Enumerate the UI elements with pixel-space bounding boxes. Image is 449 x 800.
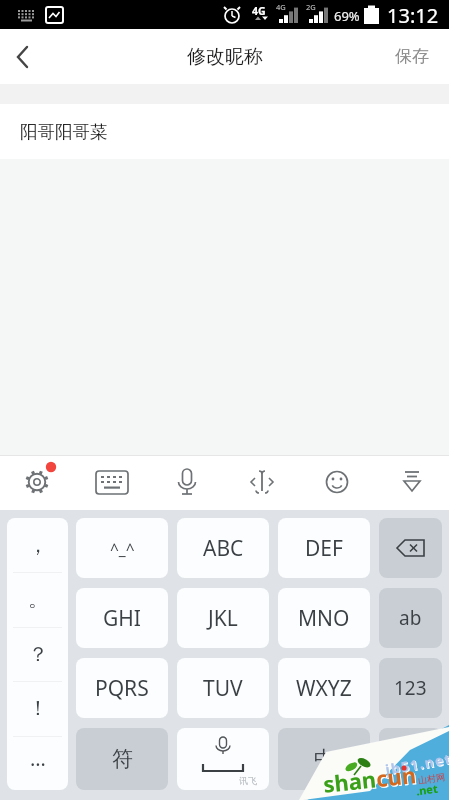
staticText: .net	[415, 780, 439, 798]
button[interactable]: JKL	[177, 588, 269, 648]
staticText: …	[30, 745, 46, 772]
staticText: ，	[28, 533, 48, 558]
button[interactable]: ABC	[177, 518, 269, 578]
button[interactable]: DEF	[278, 518, 370, 578]
button[interactable]: 中	[278, 728, 370, 790]
staticText: ？	[28, 642, 48, 667]
staticText: 123	[394, 675, 427, 701]
staticText: 修改昵称	[187, 45, 263, 69]
button[interactable]	[379, 728, 442, 790]
button[interactable]: ^_^	[76, 518, 168, 578]
button[interactable]: ab	[379, 588, 442, 648]
button[interactable]: 讯飞	[177, 728, 269, 790]
staticText: 中	[314, 746, 335, 772]
button[interactable]: TUV	[177, 658, 269, 718]
staticText: TUV	[203, 674, 243, 703]
staticText: shan	[323, 764, 378, 800]
staticText: 讯飞	[239, 775, 257, 786]
staticText: PQRS	[95, 674, 149, 703]
staticText: 69%	[334, 7, 360, 25]
staticText: 13:12	[387, 2, 439, 29]
staticText: cun	[375, 760, 418, 794]
staticText: cun	[374, 759, 417, 793]
staticText: jb51.net	[384, 749, 449, 779]
staticText: shan	[322, 763, 377, 799]
staticText: WXYZ	[296, 674, 352, 703]
button[interactable]	[299, 456, 374, 510]
staticText: 4G	[276, 2, 286, 12]
button[interactable]	[74, 456, 149, 510]
button[interactable]	[379, 518, 442, 578]
staticText: 阳哥阳哥菜	[20, 121, 108, 143]
button[interactable]: MNO	[278, 588, 370, 648]
staticText: ABC	[203, 534, 244, 563]
button[interactable]	[374, 456, 449, 510]
button[interactable]	[224, 456, 299, 510]
staticText: 4G	[252, 4, 266, 18]
staticText: jb51.net	[385, 750, 449, 780]
button[interactable]: 保存	[375, 32, 449, 81]
staticText: GHI	[103, 604, 141, 633]
staticText: ^_^	[110, 538, 135, 559]
staticText: 。	[28, 587, 48, 612]
button[interactable]	[0, 33, 48, 81]
button[interactable]: ，	[7, 518, 68, 790]
staticText: JKL	[208, 604, 238, 633]
button[interactable]	[0, 456, 74, 510]
staticText: ab	[399, 605, 422, 631]
staticText: 2G	[306, 2, 316, 12]
button[interactable]	[149, 456, 224, 510]
button[interactable]: 阳哥阳哥菜	[0, 104, 449, 159]
button[interactable]: 123	[379, 658, 442, 718]
staticText: ！	[28, 696, 48, 721]
button[interactable]: 符	[76, 728, 168, 790]
button[interactable]: WXYZ	[278, 658, 370, 718]
staticText: MNO	[298, 604, 350, 633]
staticText: 山村网	[417, 771, 446, 786]
button[interactable]: PQRS	[76, 658, 168, 718]
staticText: 符	[112, 746, 133, 772]
button[interactable]: GHI	[76, 588, 168, 648]
staticText: 保存	[395, 46, 429, 67]
staticText: DEF	[305, 534, 343, 563]
